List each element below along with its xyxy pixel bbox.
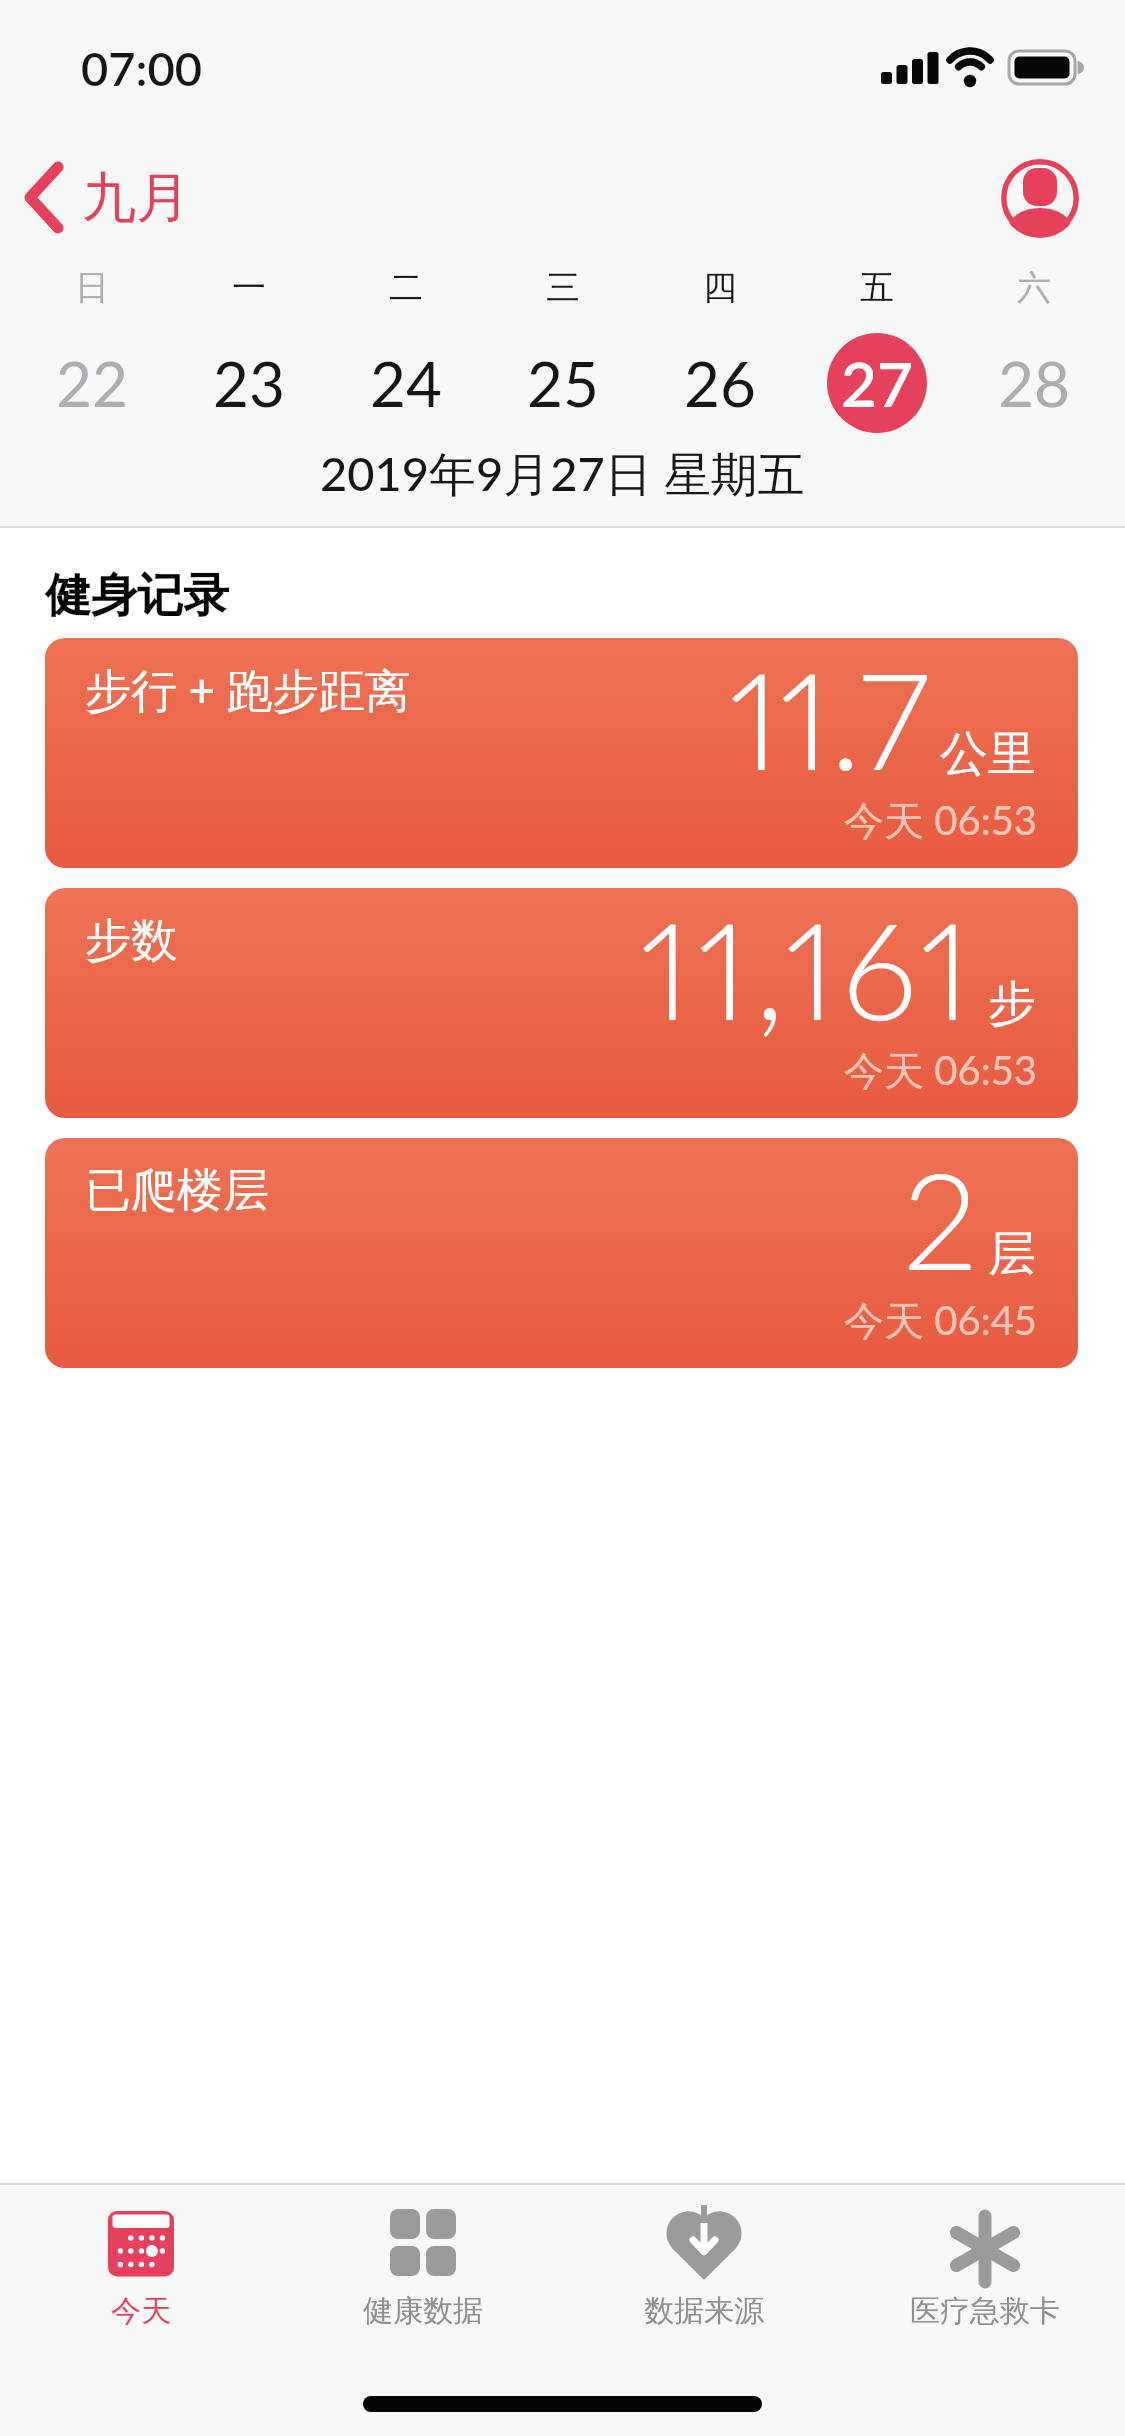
staticText: 九月 xyxy=(82,164,190,232)
staticText: 11.7 xyxy=(729,638,930,799)
staticText: 已爬楼层 xyxy=(85,1162,269,1220)
staticText: 健身记录 xyxy=(45,567,229,625)
staticText: 步数 xyxy=(85,912,177,970)
staticText: 医疗急救卡 xyxy=(910,2292,1060,2328)
staticText: 28 xyxy=(998,346,1070,420)
button[interactable]: 今天 xyxy=(0,2183,282,2436)
staticText: 四 xyxy=(703,266,737,306)
button[interactable]: 数据来源 xyxy=(563,2183,844,2436)
staticText: 步 xyxy=(988,974,1036,1034)
staticText: 25 xyxy=(527,346,599,420)
staticText: 2 xyxy=(903,1138,978,1299)
staticText: 今天 06:45 xyxy=(844,1296,1038,1340)
button[interactable]: 步数 xyxy=(45,888,1078,1118)
button[interactable]: 24 xyxy=(327,331,484,435)
staticText: 11,161 xyxy=(640,888,978,1049)
staticText: 日 xyxy=(75,266,109,306)
staticText: 六 xyxy=(1017,266,1051,306)
staticText: 步行 + 跑步距离 xyxy=(85,662,411,720)
button[interactable]: 步行 + 跑步距离 xyxy=(45,638,1078,868)
button[interactable]: 22 xyxy=(13,331,170,435)
staticText: 五 xyxy=(860,266,894,306)
button[interactable]: 27 xyxy=(827,333,927,433)
button[interactable]: 27 xyxy=(798,331,955,435)
staticText: 23 xyxy=(213,346,285,420)
staticText: 27 xyxy=(841,346,913,420)
staticText: 2019年9月27日 星期五 xyxy=(320,445,805,505)
staticText: 层 xyxy=(988,1224,1036,1284)
button[interactable]: 九月 xyxy=(20,150,195,245)
button[interactable]: 25 xyxy=(484,331,641,435)
staticText: 26 xyxy=(684,346,756,420)
staticText: 公里 xyxy=(940,724,1036,784)
button[interactable]: 已爬楼层 xyxy=(45,1138,1078,1368)
staticText: 24 xyxy=(370,346,442,420)
staticText: 22 xyxy=(56,346,128,420)
staticText: 今天 xyxy=(111,2292,171,2328)
staticText: 07:00 xyxy=(81,40,202,96)
staticText: 今天 06:53 xyxy=(844,1046,1038,1090)
staticText: 今天 06:53 xyxy=(844,796,1038,840)
staticText: 数据来源 xyxy=(644,2292,764,2328)
button[interactable]: 28 xyxy=(955,331,1112,435)
button[interactable]: 26 xyxy=(641,331,798,435)
staticText: 一 xyxy=(232,266,266,306)
staticText: 健康数据 xyxy=(363,2292,483,2328)
staticText: 三 xyxy=(546,266,580,306)
button[interactable]: 健康数据 xyxy=(282,2183,563,2436)
staticText: 二 xyxy=(389,266,423,306)
button[interactable] xyxy=(1000,158,1080,238)
button[interactable]: 23 xyxy=(170,331,327,435)
button[interactable]: 医疗急救卡 xyxy=(844,2183,1125,2436)
